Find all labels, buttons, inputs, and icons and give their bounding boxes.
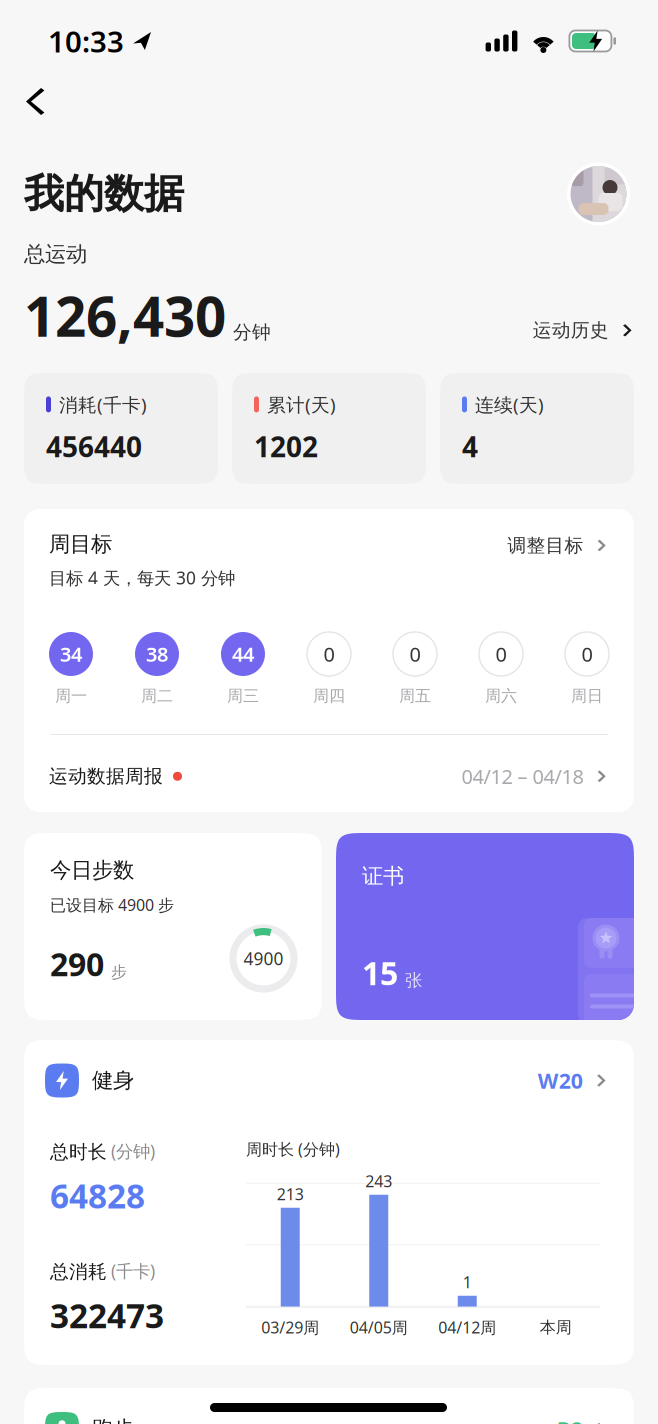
staticText: W20: [538, 1066, 583, 1095]
staticText: 34: [60, 641, 82, 667]
staticText: 分钟: [233, 321, 271, 344]
staticText: 4: [462, 428, 478, 465]
staticText: 0: [323, 641, 334, 667]
staticText: 证书: [362, 863, 404, 889]
staticText: 运动历史: [533, 319, 609, 342]
staticText: 290: [50, 942, 104, 985]
staticText: (千卡): [111, 1259, 155, 1282]
staticText: 跑步: [92, 1416, 134, 1424]
staticText: 消耗(千卡): [59, 392, 147, 417]
staticText: 04/05周: [350, 1317, 408, 1338]
staticText: 运动数据周报: [49, 765, 163, 788]
staticText: 周四: [313, 686, 345, 706]
staticText: 0: [495, 641, 506, 667]
staticText: 总时长: [50, 1141, 107, 1163]
staticText: 0: [581, 641, 592, 667]
staticText: 456440: [46, 428, 142, 465]
staticText: 0: [409, 641, 420, 667]
button[interactable]: 健身: [24, 1039, 634, 1109]
button[interactable]: Profile: [567, 162, 658, 225]
button[interactable]: 周目标: [24, 525, 634, 595]
button[interactable]: 运动历史: [533, 309, 658, 352]
staticText: 周一: [55, 686, 87, 706]
staticText: 本周: [540, 1317, 572, 1337]
staticText: 周三: [227, 686, 259, 706]
staticText: 健身: [92, 1067, 134, 1094]
staticText: 64828: [50, 1173, 145, 1218]
button[interactable]: 今日步数: [24, 833, 322, 1020]
staticText: 04/12 – 04/18: [461, 763, 583, 790]
staticText: 1202: [254, 428, 318, 465]
staticText: 322473: [50, 1293, 164, 1337]
staticText: 38: [146, 641, 168, 667]
staticText: 04/12周: [438, 1317, 496, 1338]
staticText: 总运动: [24, 241, 87, 267]
button[interactable]: 连续(天): [440, 373, 634, 484]
staticText: 10:33: [48, 21, 124, 60]
button[interactable]: 运动数据周报: [24, 746, 634, 807]
staticText: R2: [557, 1415, 583, 1424]
staticText: 累计(天): [267, 392, 336, 417]
button[interactable]: 累计(天): [232, 373, 426, 484]
staticText: 今日步数: [50, 857, 134, 883]
staticText: 44: [232, 641, 254, 667]
staticText: 4900: [243, 947, 283, 970]
staticText: 张: [405, 970, 422, 991]
staticText: 步: [111, 962, 127, 982]
staticText: 03/29周: [261, 1317, 319, 1338]
staticText: 周二: [141, 686, 173, 706]
staticText: 调整目标: [507, 534, 583, 557]
staticText: 周六: [485, 686, 517, 706]
staticText: 周时长 (分钟): [246, 1138, 340, 1160]
staticText: 周五: [399, 686, 431, 706]
staticText: 213: [277, 1183, 304, 1205]
button[interactable]: Back: [0, 72, 65, 131]
staticText: 已设目标 4900 步: [50, 894, 174, 915]
staticText: 连续(天): [475, 392, 544, 417]
staticText: 周目标: [49, 531, 112, 557]
button[interactable]: 消耗(千卡): [24, 373, 218, 484]
staticText: 我的数据: [24, 169, 184, 218]
staticText: 15: [362, 951, 398, 994]
staticText: 目标 4 天，每天 30 分钟: [49, 566, 235, 589]
staticText: 周日: [571, 686, 603, 706]
staticText: 243: [365, 1170, 392, 1192]
button[interactable]: 证书: [336, 833, 634, 1020]
staticText: 126,430: [24, 279, 226, 352]
staticText: (分钟): [111, 1139, 155, 1162]
staticText: 1: [463, 1271, 472, 1293]
staticText: 总消耗: [50, 1260, 107, 1283]
